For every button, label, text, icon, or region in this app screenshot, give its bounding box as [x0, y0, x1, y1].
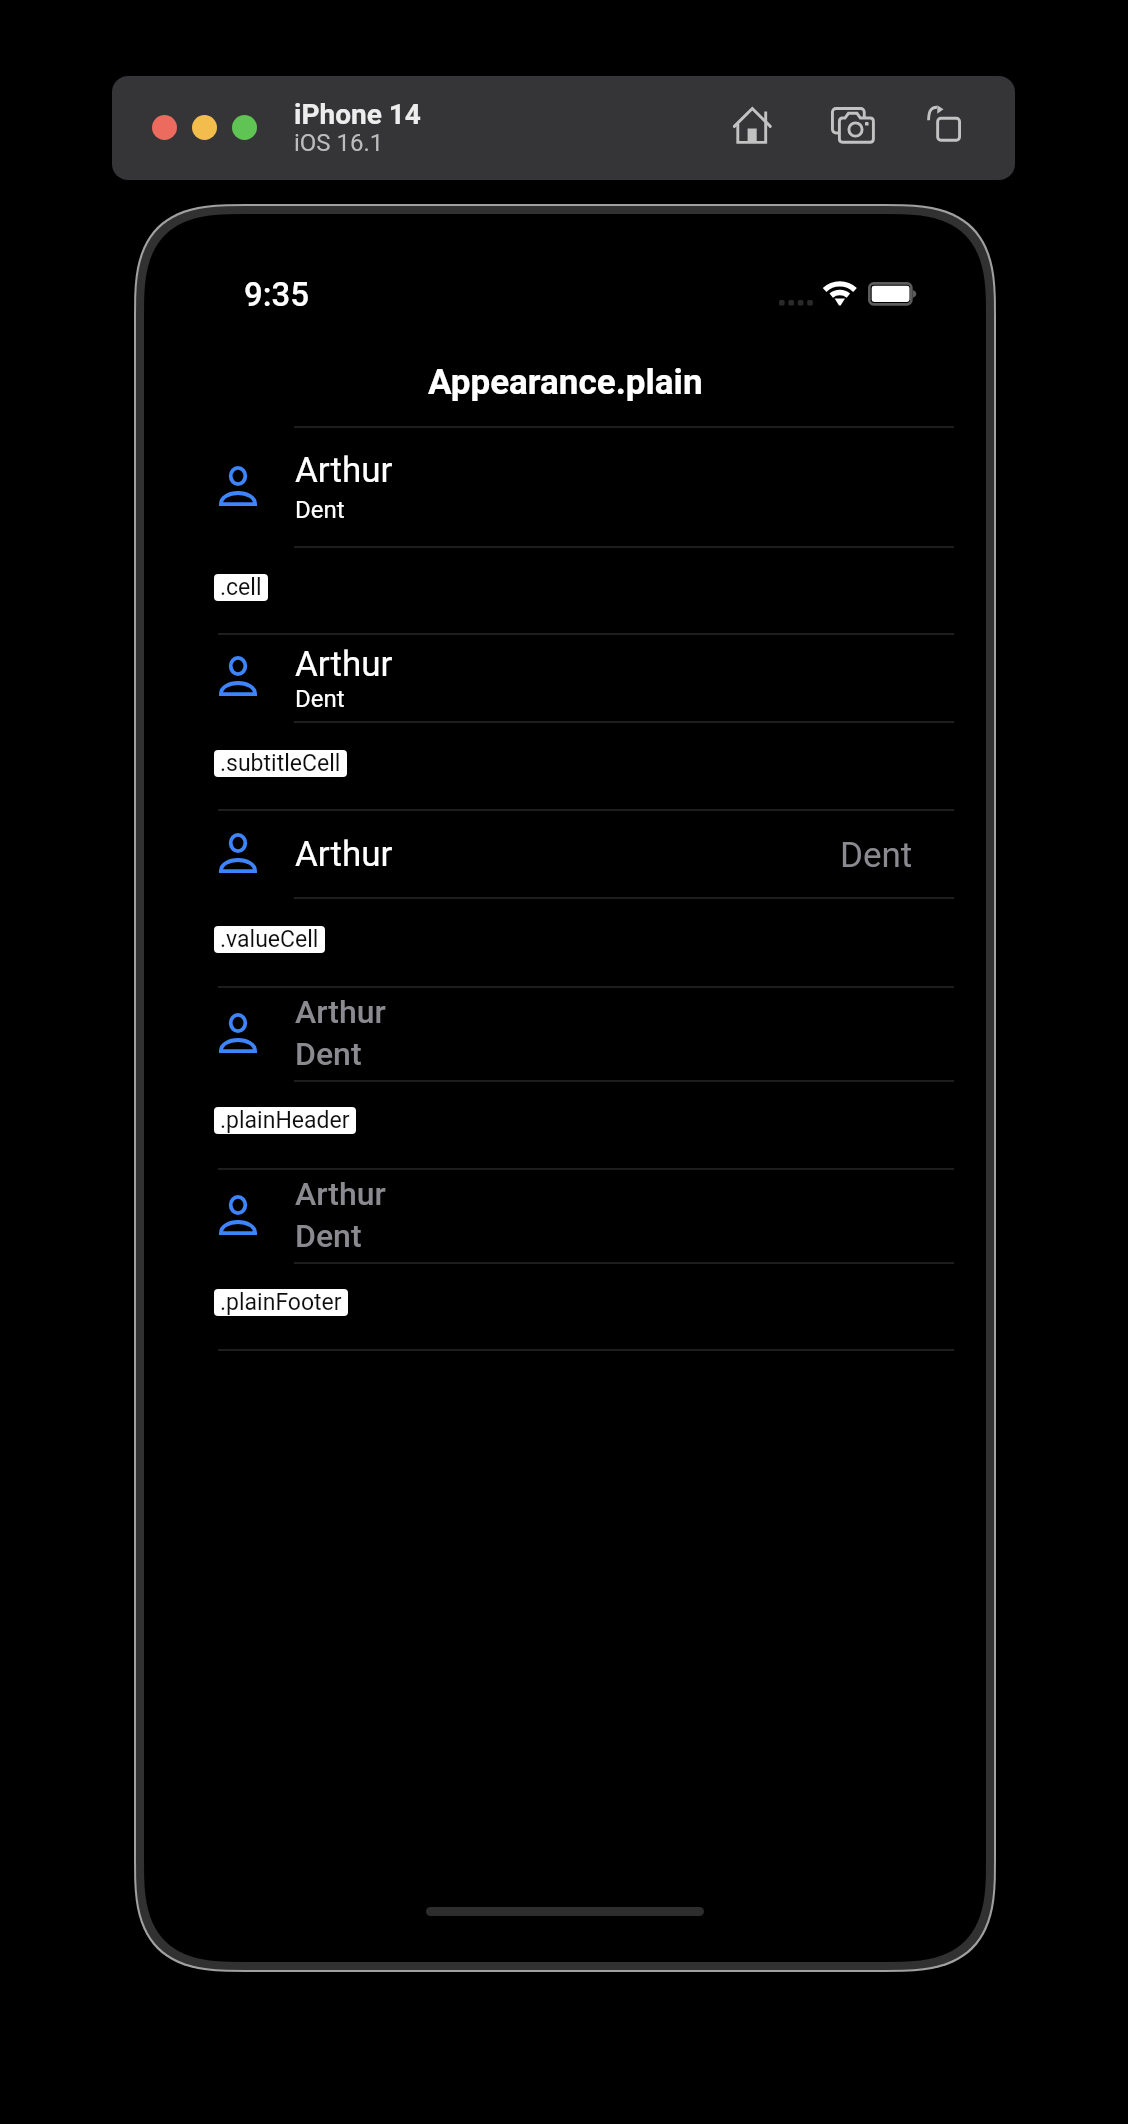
- button[interactable]: .cell: [214, 574, 268, 601]
- button[interactable]: .valueCell: [214, 926, 325, 953]
- staticText: iPhone 14: [294, 98, 421, 131]
- button[interactable]: .plainFooter: [214, 1289, 348, 1316]
- staticText: Dent: [295, 1217, 362, 1255]
- button[interactable]: [144, 986, 986, 1080]
- staticText: Arthur: [295, 1175, 386, 1213]
- button[interactable]: Screenshot: [820, 92, 886, 158]
- staticText: Appearance.plain: [428, 362, 703, 403]
- staticText: Dent: [295, 496, 345, 524]
- button[interactable]: .plainHeader: [214, 1107, 356, 1134]
- button[interactable]: [144, 426, 986, 546]
- staticText: Arthur: [295, 834, 393, 875]
- staticText: Arthur: [295, 993, 386, 1031]
- staticText: Arthur: [295, 450, 393, 491]
- staticText: Dent: [295, 1035, 362, 1073]
- button[interactable]: [144, 809, 986, 897]
- staticText: Dent: [840, 835, 913, 876]
- staticText: iOS 16.1: [294, 129, 384, 157]
- staticText: .cell: [220, 574, 262, 601]
- staticText: .plainFooter: [220, 1289, 342, 1316]
- staticText: .subtitleCell: [220, 750, 341, 777]
- staticText: .plainHeader: [220, 1107, 350, 1134]
- button[interactable]: Rotate: [908, 87, 974, 153]
- staticText: Dent: [295, 685, 345, 713]
- button[interactable]: Minimise window: [192, 115, 217, 140]
- button[interactable]: .subtitleCell: [214, 750, 347, 777]
- button[interactable]: Home: [720, 92, 786, 158]
- staticText: Arthur: [295, 644, 393, 685]
- button[interactable]: Close window: [152, 115, 177, 140]
- button[interactable]: Zoom window: [232, 115, 257, 140]
- staticText: 9:35: [244, 275, 310, 314]
- button[interactable]: [144, 633, 986, 721]
- staticText: .valueCell: [220, 926, 319, 953]
- button[interactable]: [144, 1168, 986, 1262]
